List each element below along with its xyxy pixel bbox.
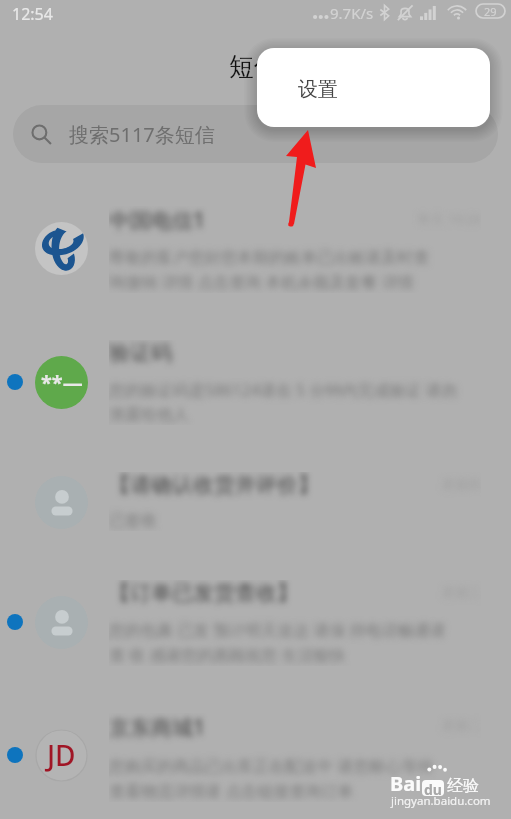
- staticText: 经验: [447, 776, 479, 796]
- button[interactable]: 【请确认收货并评价】: [0, 440, 511, 564]
- staticText: 【订单已发货查收】: [109, 580, 389, 606]
- button[interactable]: **—: [0, 320, 511, 444]
- staticText: 【请确认收货并评价】: [109, 472, 389, 498]
- button[interactable]: 中国电信1: [0, 186, 511, 310]
- staticText: 京东商城1: [109, 713, 389, 742]
- staticText: 搜索5117条短信: [69, 121, 215, 148]
- staticText: 29: [484, 4, 497, 18]
- staticText: 您购买的商品已出库正在配送中 请您耐心等待 查看物流详情请 点击链接查询订单: [109, 755, 459, 802]
- button[interactable]: 搜索5117条短信: [13, 105, 498, 163]
- staticText: 中国电信1: [109, 206, 389, 235]
- staticText: Bai: [390, 770, 422, 797]
- staticText: 尊敬的客户您好您本期的账单已出账请及时查 询缴纳 详情 点击查询 本机余额及套餐…: [109, 248, 459, 293]
- staticText: 您的验证码是586124请在 5 分钟内完成验证 请勿泄露给他人 本条短信无需回…: [109, 379, 459, 425]
- staticText: 短信: [229, 51, 279, 82]
- button[interactable]: JD: [0, 693, 511, 817]
- staticText: jingyan.baidu.com: [391, 793, 491, 809]
- staticText: 12:54: [12, 3, 53, 25]
- staticText: 验证码: [109, 340, 389, 366]
- staticText: JD: [47, 736, 76, 774]
- staticText: 已签收: [109, 511, 459, 531]
- staticText: du: [424, 780, 442, 796]
- staticText: 您的包裹 已发 预计明天送达 请保 持电话畅通请 查 收 感谢您的惠顾祝您 生活…: [109, 619, 459, 666]
- button[interactable]: 【订单已发货查收】: [0, 560, 511, 684]
- staticText: 9.7K/s: [330, 3, 374, 23]
- button[interactable]: 设置: [257, 48, 490, 127]
- staticText: 设置: [298, 77, 338, 102]
- staticText: **—: [41, 369, 83, 396]
